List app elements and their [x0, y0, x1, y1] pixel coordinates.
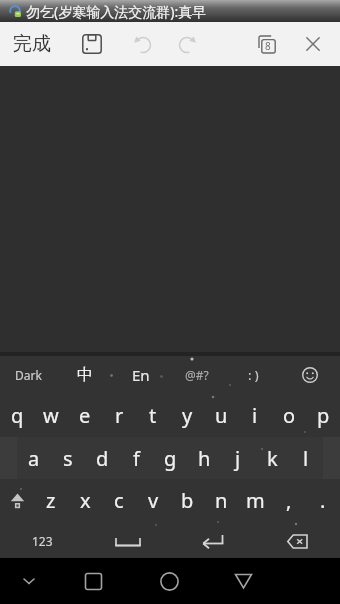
button[interactable] [131, 32, 155, 56]
button[interactable] [304, 35, 322, 53]
staticText: En [132, 365, 150, 385]
staticText: n [215, 487, 228, 514]
button[interactable]: w [34, 393, 68, 437]
button[interactable]: : ) [231, 356, 275, 393]
staticText: k [267, 445, 278, 472]
button[interactable]: a [17, 437, 51, 479]
button[interactable]: b [170, 479, 204, 521]
button[interactable] [175, 32, 199, 56]
staticText: , [286, 487, 292, 514]
button[interactable]: n [204, 479, 238, 521]
button[interactable] [81, 33, 103, 55]
button[interactable]: h [187, 437, 221, 479]
button[interactable] [81, 569, 106, 594]
staticText: u [215, 402, 228, 429]
staticText: o [283, 402, 296, 429]
staticText: 勿乞(岁寒输入法交流群):真早 [26, 2, 207, 21]
staticText: g [164, 445, 177, 472]
button[interactable]: En [122, 356, 160, 393]
staticText: m [246, 487, 265, 514]
staticText: h [198, 445, 211, 472]
staticText: v [148, 487, 159, 514]
button[interactable]: @#? [175, 356, 219, 393]
button[interactable]: u [204, 393, 238, 437]
button[interactable]: . [306, 479, 340, 521]
button[interactable]: z [34, 479, 68, 521]
staticText: 123 [32, 533, 53, 549]
button[interactable]: , [272, 479, 306, 521]
staticText: : ) [248, 366, 259, 384]
staticText: 完成 [13, 32, 51, 56]
button[interactable]: l [289, 437, 323, 479]
staticText: r [115, 402, 124, 429]
button[interactable]: 完成 [6, 22, 58, 66]
staticText: z [46, 487, 56, 514]
button[interactable]: t [136, 393, 170, 437]
button[interactable] [231, 569, 256, 594]
staticText: t [149, 402, 157, 429]
button[interactable]: c [102, 479, 136, 521]
button[interactable]: r [102, 393, 136, 437]
button[interactable] [170, 521, 255, 558]
staticText: w [43, 402, 59, 429]
button[interactable]: 8 [256, 33, 278, 55]
button[interactable]: e [68, 393, 102, 437]
staticText: 8 [265, 39, 271, 53]
button[interactable]: d [85, 437, 119, 479]
button[interactable] [296, 361, 324, 389]
button[interactable]: s [51, 437, 85, 479]
staticText: Dark [15, 367, 42, 383]
staticText: a [28, 445, 40, 472]
button[interactable]: 中 [66, 356, 104, 393]
button[interactable]: m [238, 479, 272, 521]
staticText: l [303, 445, 309, 472]
button[interactable]: p [306, 393, 340, 437]
button[interactable]: o [272, 393, 306, 437]
staticText: @#? [185, 367, 209, 383]
staticText: c [114, 487, 124, 514]
staticText: j [235, 445, 241, 472]
button[interactable] [255, 521, 340, 558]
staticText: s [63, 445, 73, 472]
staticText: 中 [77, 365, 93, 385]
staticText: x [80, 487, 91, 514]
button[interactable] [0, 479, 34, 521]
button[interactable]: v [136, 479, 170, 521]
staticText: y [182, 402, 193, 429]
button[interactable] [19, 571, 39, 591]
staticText: b [181, 487, 194, 514]
button[interactable]: j [221, 437, 255, 479]
button[interactable] [85, 521, 170, 558]
staticText: d [96, 445, 109, 472]
staticText: e [79, 402, 91, 429]
button[interactable]: i [238, 393, 272, 437]
button[interactable]: f [119, 437, 153, 479]
button[interactable]: k [255, 437, 289, 479]
button[interactable]: g [153, 437, 187, 479]
button[interactable]: y [170, 393, 204, 437]
staticText: i [252, 402, 258, 429]
button[interactable]: 123 [0, 521, 85, 558]
button[interactable] [157, 569, 182, 594]
button[interactable]: q [0, 393, 34, 437]
button[interactable]: Dark [6, 356, 50, 393]
staticText: . [320, 487, 326, 514]
staticText: q [11, 402, 24, 429]
staticText: f [133, 445, 140, 472]
staticText: p [317, 402, 330, 429]
button[interactable]: x [68, 479, 102, 521]
